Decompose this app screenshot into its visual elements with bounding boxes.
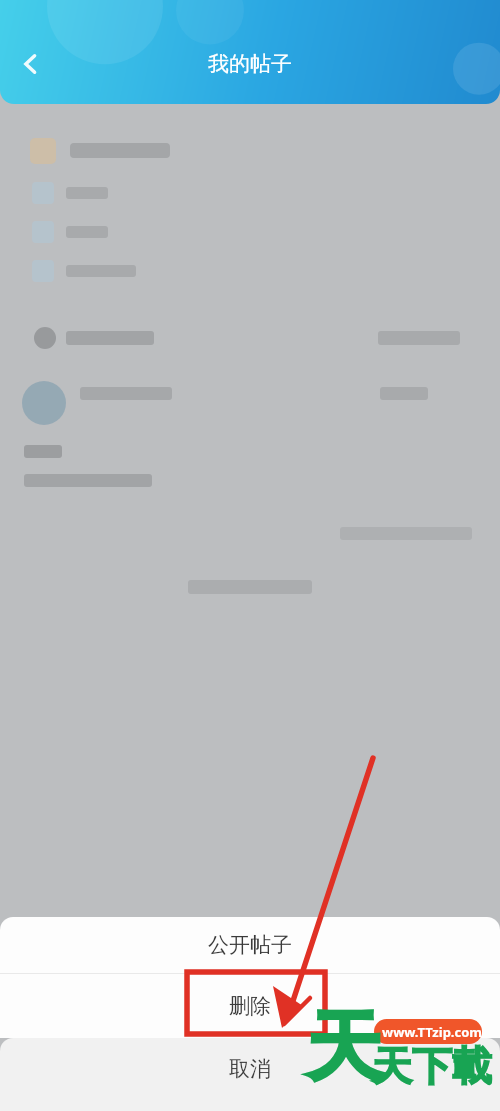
staticText: 我的帖子 [208,51,292,77]
staticText: www.TTzip.com [382,1023,483,1041]
button[interactable]: Back [4,36,58,92]
button[interactable]: 删除 [0,974,500,1038]
button[interactable]: 公开帖子 [0,917,500,973]
staticText: 公开帖子 [208,932,292,958]
staticText: 取消 [229,1056,271,1082]
button[interactable]: 取消 [0,1038,500,1111]
staticText: 天 [306,1000,382,1096]
staticText: 删除 [229,993,271,1019]
staticText: 天下載 [372,1041,492,1091]
